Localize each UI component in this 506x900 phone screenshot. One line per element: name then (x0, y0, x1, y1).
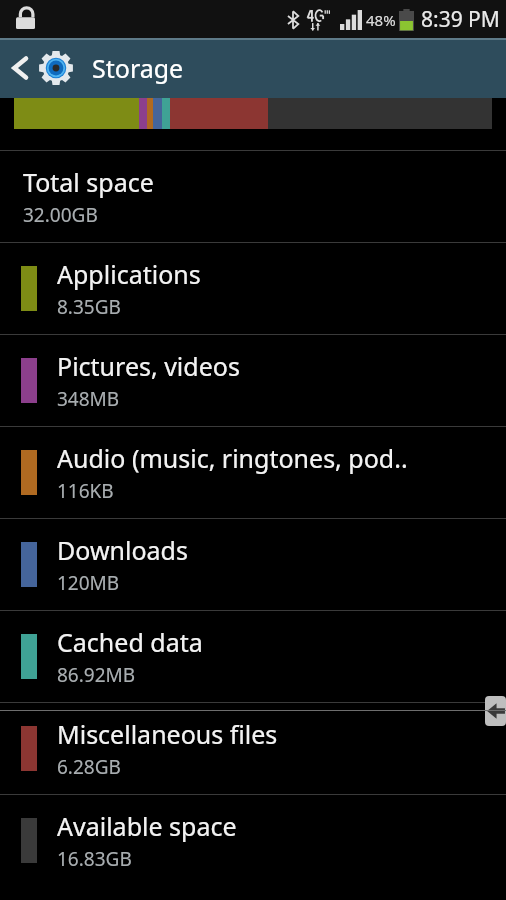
staticText: 8:39 PM (421, 5, 500, 34)
staticText: 120MB (57, 570, 120, 596)
staticText: Audio (music, ringtones, pod.. (57, 441, 408, 475)
button[interactable]: Applications (0, 243, 506, 334)
staticText: 32.00GB (23, 202, 98, 228)
staticText: Downloads (57, 533, 188, 567)
staticText: 48% (366, 10, 396, 30)
staticText: 116KB (57, 478, 114, 504)
button[interactable]: Available space (0, 795, 506, 886)
staticText: Storage (92, 51, 184, 85)
button[interactable]: Audio (music, ringtones, pod.. (0, 427, 506, 518)
staticText: 6.28GB (57, 754, 121, 780)
button[interactable]: Downloads (0, 519, 506, 610)
staticText: Cached data (57, 625, 203, 659)
staticText: Available space (57, 809, 237, 843)
staticText: 16.83GB (57, 846, 132, 872)
staticText: Miscellaneous files (57, 717, 278, 751)
staticText: Applications (57, 257, 201, 291)
staticText: Total space (23, 165, 154, 199)
button[interactable]: Navigate up (0, 38, 92, 98)
button[interactable]: Miscellaneous files (0, 703, 506, 794)
staticText: 348MB (57, 386, 120, 412)
button[interactable]: Total space (0, 151, 506, 242)
staticText: Pictures, videos (57, 349, 240, 383)
staticText: 8.35GB (57, 294, 121, 320)
button[interactable]: Pictures, videos (0, 335, 506, 426)
button[interactable]: Cached data (0, 611, 506, 702)
staticText: 86.92MB (57, 662, 136, 688)
